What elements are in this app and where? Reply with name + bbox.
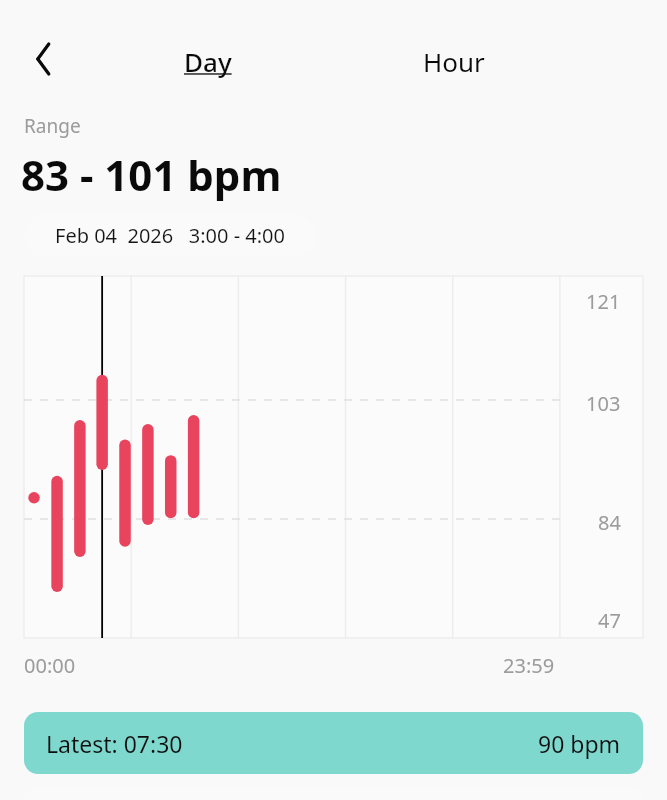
staticText: 84 xyxy=(598,509,621,536)
button[interactable]: Hour xyxy=(417,40,491,83)
button[interactable]: Feb 04 2026 3:00 - 4:00 xyxy=(24,214,316,257)
staticText: Day xyxy=(184,44,232,79)
staticText: Range xyxy=(24,113,81,139)
staticText: 121 xyxy=(586,288,621,315)
staticText: 23:59 xyxy=(503,652,555,679)
staticText: 83 - 101 bpm xyxy=(21,146,282,203)
staticText: Feb 04 2026 3:00 - 4:00 xyxy=(55,222,285,249)
staticText: 00:00 xyxy=(24,652,76,679)
staticText: 47 xyxy=(598,607,621,634)
button[interactable]: Latest: 07:30 xyxy=(24,712,643,774)
staticText: Hour xyxy=(423,44,485,79)
button[interactable]: Day xyxy=(178,40,238,83)
staticText: 90 bpm xyxy=(538,728,621,759)
button[interactable]: Back xyxy=(18,36,64,82)
staticText: Latest: 07:30 xyxy=(46,728,183,759)
staticText: 103 xyxy=(586,390,621,417)
